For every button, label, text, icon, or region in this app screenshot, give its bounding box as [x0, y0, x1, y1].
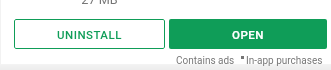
staticText: In-app purchases: [246, 55, 323, 67]
staticText: 27 MB: [81, 0, 118, 7]
staticText: OPEN: [232, 28, 264, 41]
button[interactable]: UNINSTALL: [14, 19, 165, 49]
button[interactable]: OPEN: [169, 19, 327, 49]
staticText: UNINSTALL: [57, 28, 122, 41]
staticText: Contains ads: [176, 55, 235, 67]
